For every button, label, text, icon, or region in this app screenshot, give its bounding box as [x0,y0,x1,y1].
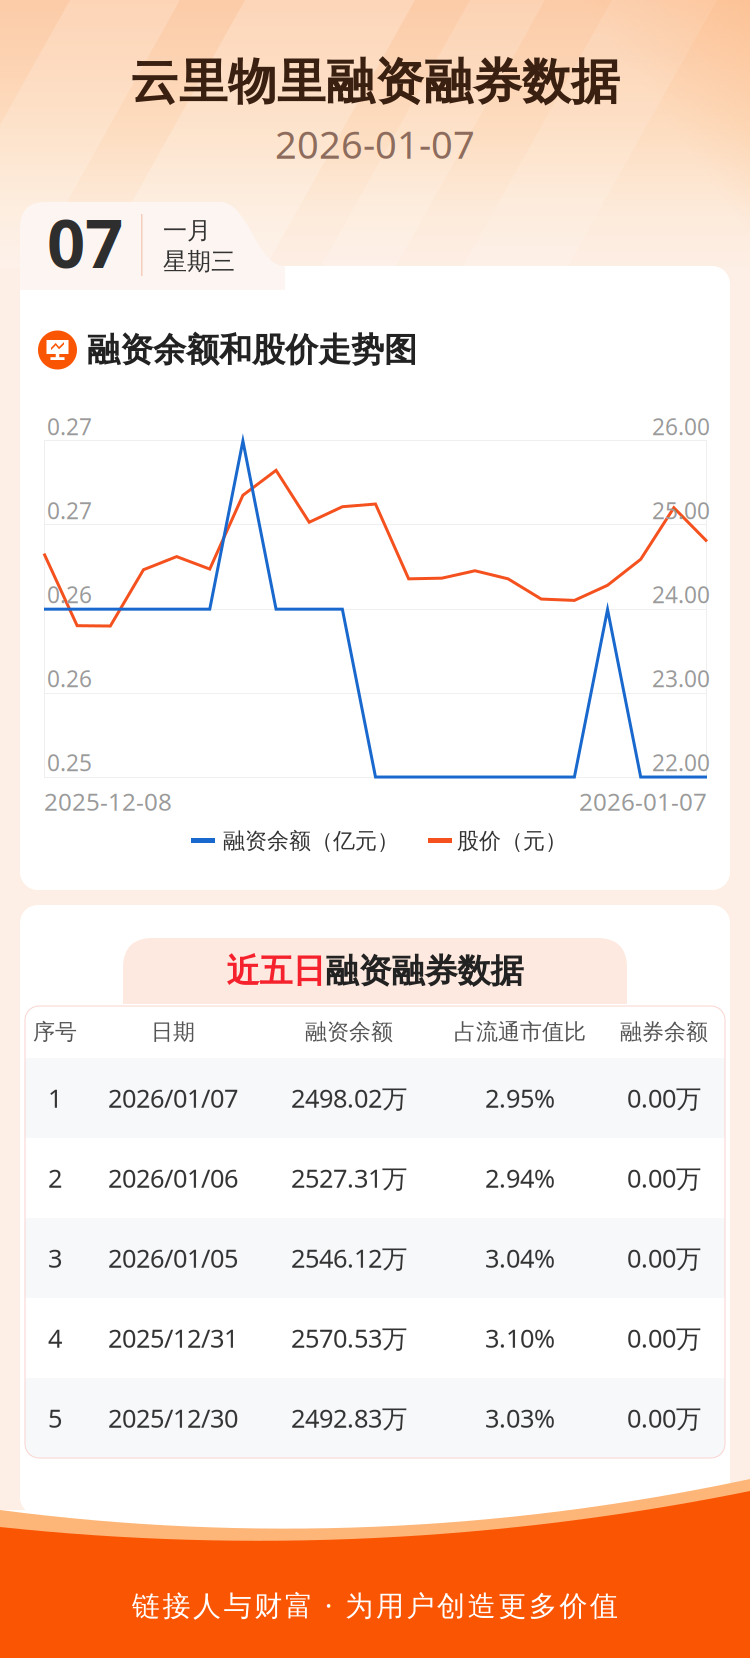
staticText: 0.27 [47,411,92,442]
staticText: 2492.83万 [291,1401,407,1435]
staticText: 2546.12万 [291,1241,407,1275]
staticText: 0.00万 [627,1161,701,1195]
staticText: 融资余额和股价走势图 [87,329,417,371]
staticText: 25.00 [652,495,710,526]
staticText: 3 [48,1241,62,1275]
staticText: 2025/12/31 [108,1321,238,1355]
staticText: 0.26 [47,579,92,610]
staticText: 2026/01/05 [108,1241,238,1275]
staticText: 2.94% [485,1161,555,1195]
staticText: 3.10% [485,1321,555,1355]
staticText: 0.00万 [627,1241,701,1275]
staticText: 0.25 [47,747,92,778]
staticText: 近五日 [226,950,325,992]
staticText: 23.00 [652,663,710,694]
staticText: 2498.02万 [291,1081,407,1115]
staticText: 1 [48,1081,62,1115]
staticText: 26.00 [652,411,710,442]
staticText: 0.00万 [627,1321,701,1355]
staticText: 2025/12/30 [108,1401,238,1435]
staticText: 22.00 [652,747,710,778]
staticText: 融资余额（亿元） [223,827,399,855]
staticText: 股价（元） [457,827,567,855]
staticText: 融券余额 [620,1018,708,1046]
staticText: 一月 [163,215,211,246]
staticText: 序号 [33,1018,77,1046]
staticText: 24.00 [652,579,710,610]
staticText: 日期 [151,1018,195,1046]
staticText: 2.95% [485,1081,555,1115]
staticText: 4 [48,1321,62,1355]
staticText: 2570.53万 [291,1321,407,1355]
staticText: 云里物里融资融券数据 [130,51,620,112]
staticText: 链接人与财富 · 为用户创造更多价值 [132,1586,618,1624]
staticText: 0.00万 [627,1401,701,1435]
staticText: 0.27 [47,495,92,526]
staticText: 2026/01/07 [108,1081,238,1115]
staticText: 2527.31万 [291,1161,407,1195]
staticText: 5 [48,1401,62,1435]
staticText: 0.26 [47,663,92,694]
staticText: 3.03% [485,1401,555,1435]
staticText: 2 [48,1161,62,1195]
staticText: 占流通市值比 [454,1018,586,1046]
staticText: 2026-01-07 [275,118,475,170]
staticText: 2026/01/06 [108,1161,238,1195]
staticText: 2026-01-07 [579,785,707,818]
staticText: 2025-12-08 [44,785,172,818]
staticText: 07 [47,196,123,288]
staticText: 融资融券数据 [325,950,523,992]
staticText: 3.04% [485,1241,555,1275]
staticText: 融资余额 [305,1018,393,1046]
staticText: 0.00万 [627,1081,701,1115]
staticText: 星期三 [163,246,235,277]
